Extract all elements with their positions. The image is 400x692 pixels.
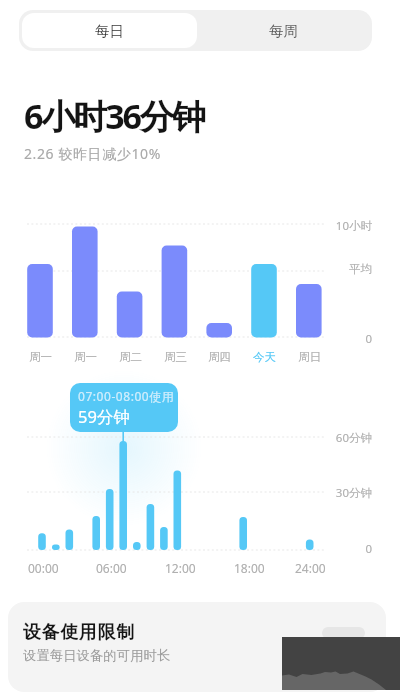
staticText: 设备使用限制	[23, 621, 136, 643]
button[interactable]: 07:00-08:00使用	[70, 383, 178, 432]
staticText: 00:00	[28, 560, 59, 576]
staticText: 每日	[95, 22, 124, 40]
staticText: 设置每日设备的可用时长	[23, 647, 171, 664]
staticText: 06:00	[96, 560, 127, 576]
staticText: 周三	[164, 350, 187, 364]
button[interactable]: 每日	[22, 13, 197, 48]
staticText: 0	[326, 331, 372, 347]
staticText: 6小时36分钟	[24, 93, 204, 139]
staticText: 周四	[208, 350, 231, 364]
staticText: 12:00	[165, 560, 196, 576]
staticText: 30分钟	[326, 485, 372, 501]
staticText: 周一	[74, 350, 97, 364]
staticText: 24:00	[295, 560, 326, 576]
staticText: 0	[326, 541, 372, 557]
staticText: 今天	[253, 350, 276, 364]
button[interactable]: 设备使用限制	[8, 602, 386, 692]
staticText: 10小时	[326, 218, 372, 234]
staticText: 周二	[119, 350, 142, 364]
button[interactable]: 每周	[197, 13, 369, 48]
staticText: 07:00-08:00使用	[78, 388, 175, 404]
staticText: 周日	[298, 350, 321, 364]
staticText: 59分钟	[78, 405, 130, 428]
staticText: 周一	[29, 350, 52, 364]
staticText: 每周	[269, 22, 298, 40]
staticText: 2.26 较昨日减少10%	[24, 144, 161, 163]
staticText: 60分钟	[326, 430, 372, 446]
staticText: 平均	[326, 262, 372, 276]
staticText: 18:00	[234, 560, 265, 576]
